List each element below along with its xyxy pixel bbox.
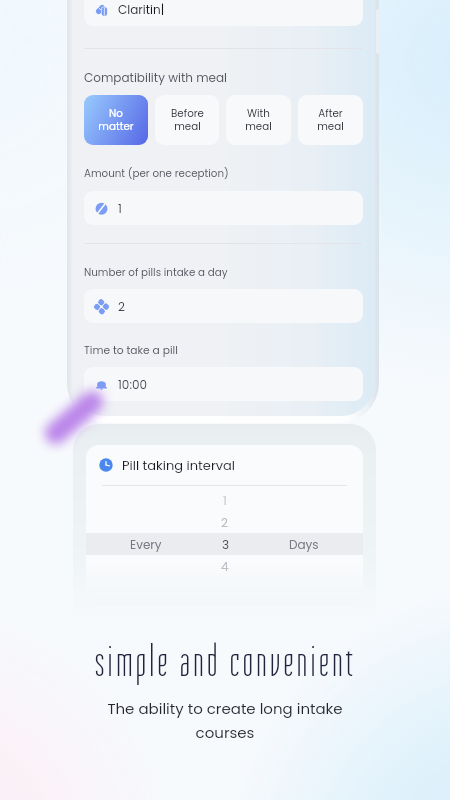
staticText: Compatibility with meal (84, 69, 228, 86)
staticText: No matter (98, 106, 134, 134)
staticText: 3 (222, 536, 230, 553)
staticText: Number of pills intake a day (84, 265, 228, 279)
staticText: 10:00 (118, 376, 148, 393)
staticText: 1 (223, 492, 227, 509)
staticText: Claritin| (118, 1, 165, 18)
button[interactable]: 2 (84, 289, 363, 323)
staticText: The ability to create long intake course… (107, 698, 343, 744)
staticText: Days (289, 536, 319, 553)
staticText: 4 (221, 558, 229, 575)
staticText: Time to take a pill (84, 343, 178, 358)
staticText: Amount (per one reception) (84, 166, 229, 180)
staticText: With meal (245, 106, 272, 134)
staticText: Every (130, 536, 162, 553)
staticText: After meal (317, 106, 344, 134)
staticText: 2 (118, 298, 125, 315)
staticText: 2 (221, 514, 228, 531)
button[interactable]: Claritin| (84, 0, 363, 26)
button[interactable]: Pill taking interval (99, 456, 236, 474)
staticText: 1 (118, 200, 122, 217)
button[interactable]: 1 (84, 191, 363, 225)
staticText: Pill taking interval (122, 456, 236, 474)
button[interactable]: Every (86, 533, 363, 555)
staticText: Before meal (171, 106, 204, 134)
button[interactable]: After meal (298, 95, 363, 145)
button[interactable]: Before meal (155, 95, 219, 145)
button[interactable]: 10:00 (84, 367, 363, 401)
button[interactable]: No matter (84, 95, 148, 145)
staticText: simple and convenient (95, 638, 356, 686)
button[interactable]: With meal (226, 95, 291, 145)
